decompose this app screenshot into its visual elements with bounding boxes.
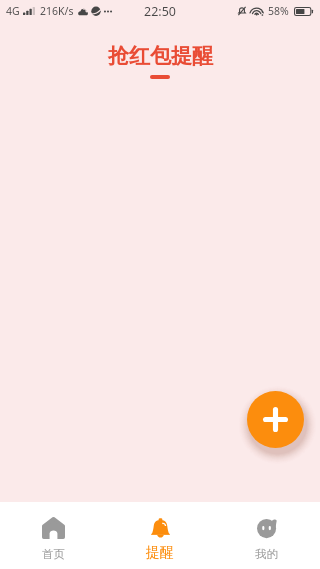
staticText: 提醒 bbox=[146, 544, 174, 562]
staticText: 216K/s bbox=[40, 4, 74, 18]
button[interactable]: 我的 bbox=[213, 502, 320, 569]
button[interactable]: Add reminder bbox=[247, 391, 304, 448]
button[interactable]: 提醒 bbox=[106, 502, 213, 569]
staticText: 22:50 bbox=[144, 3, 176, 20]
staticText: 58% bbox=[268, 4, 289, 18]
button[interactable]: 首页 bbox=[0, 502, 106, 569]
staticText: 我的 bbox=[255, 547, 278, 561]
staticText: 4G bbox=[6, 4, 20, 18]
staticText: 首页 bbox=[42, 547, 65, 561]
staticText: 抢红包提醒 bbox=[108, 43, 213, 69]
